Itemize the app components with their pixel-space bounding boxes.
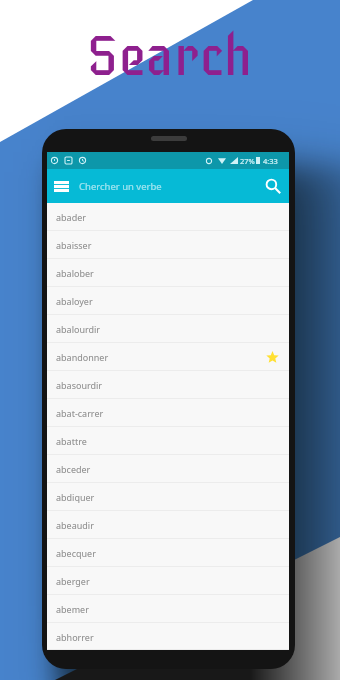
button[interactable]: Open navigation menu (50, 175, 72, 197)
button[interactable]: abasourdir (47, 371, 289, 399)
staticText: abaisser (56, 239, 92, 251)
button[interactable]: abalourdir (47, 315, 289, 343)
staticText: abaloyer (56, 295, 93, 307)
button[interactable]: abat-carrer (47, 399, 289, 427)
staticText: abhorrer (56, 631, 94, 643)
button[interactable]: abalober (47, 259, 289, 287)
staticText: abasourdir (56, 379, 103, 391)
staticText: abemer (56, 603, 89, 615)
staticText: 27% (240, 156, 255, 166)
staticText: abecquer (56, 547, 96, 559)
button[interactable]: abaisser (47, 231, 289, 259)
button[interactable]: abattre (47, 427, 289, 455)
staticText: aberger (56, 575, 90, 587)
staticText: Chercher un verbe (79, 180, 162, 193)
button[interactable]: abecquer (47, 539, 289, 567)
button[interactable]: aberger (47, 567, 289, 595)
button[interactable]: abader (47, 203, 289, 231)
staticText: abader (56, 211, 86, 223)
staticText: abalober (56, 267, 94, 279)
staticText: abceder (56, 463, 91, 475)
button[interactable]: abandonner (47, 343, 289, 371)
button[interactable]: abeaudir (47, 511, 289, 539)
button[interactable]: abhorrer (47, 623, 289, 650)
button[interactable]: abdiquer (47, 483, 289, 511)
staticText: abat-carrer (56, 407, 104, 419)
staticText: abandonner (56, 351, 109, 363)
staticText: abalourdir (56, 323, 101, 335)
staticText: Search (87, 23, 253, 91)
staticText: abattre (56, 435, 87, 447)
button[interactable]: abaloyer (47, 287, 289, 315)
staticText: 4:33 (263, 156, 278, 166)
button[interactable]: Search (260, 173, 286, 199)
button[interactable]: abemer (47, 595, 289, 623)
staticText: abdiquer (56, 491, 95, 503)
button[interactable]: abceder (47, 455, 289, 483)
staticText: abeaudir (56, 519, 94, 531)
